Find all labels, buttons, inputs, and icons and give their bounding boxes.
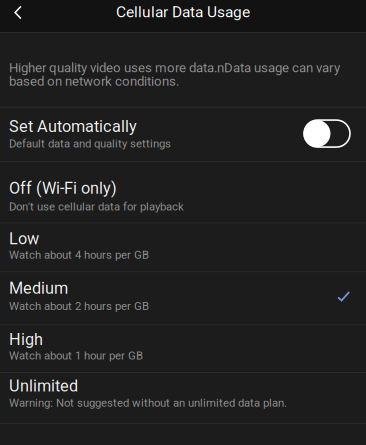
button[interactable]: Unlimited — [0, 373, 366, 423]
staticText: High — [9, 331, 43, 348]
staticText: Set Automatically — [9, 118, 137, 134]
staticText: Watch about 4 hours per GB — [9, 250, 149, 260]
staticText: Watch about 2 hours per GB — [9, 301, 149, 311]
staticText: Cellular Data Usage — [116, 3, 250, 21]
button[interactable]: Low — [0, 224, 366, 271]
staticText: Higher quality video uses more data.nDat… — [9, 61, 340, 88]
staticText: Watch about 1 hour per GB — [9, 350, 143, 361]
staticText: Warning: Not suggested without an unlimi… — [9, 398, 287, 408]
button[interactable]: Back — [0, 0, 36, 32]
button[interactable]: Off (Wi-Fi only) — [0, 162, 366, 222]
staticText: Medium — [9, 280, 68, 296]
staticText: Unlimited — [9, 378, 78, 394]
staticText: Low — [9, 230, 39, 247]
staticText: Default data and quality settings — [9, 138, 171, 149]
button[interactable]: Medium — [0, 272, 366, 324]
staticText: Off (Wi-Fi only) — [9, 180, 117, 196]
staticText: Don't use cellular data for playback — [9, 201, 184, 212]
button[interactable]: Set Automatically — [0, 108, 366, 161]
button[interactable]: High — [0, 325, 366, 372]
